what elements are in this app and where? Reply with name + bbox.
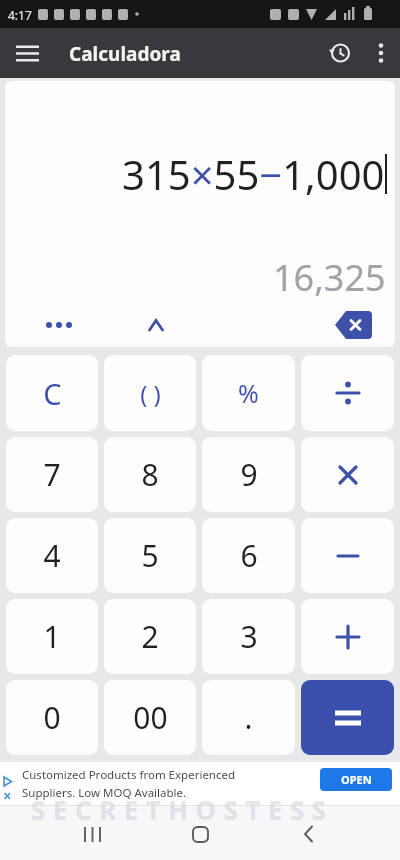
button[interactable] [8,34,46,72]
button[interactable]: 7 [6,437,98,512]
button[interactable]: 9 [202,437,295,512]
button[interactable]: % [202,355,295,431]
button[interactable]: 5 [104,518,196,593]
staticText: 00 [133,697,168,738]
button[interactable]: 3 [202,599,295,674]
staticText: % [238,376,259,410]
button[interactable] [301,518,394,593]
button[interactable]: 1 [6,599,98,674]
staticText: Customized Products from Experienced [22,767,236,783]
button[interactable]: 0 [6,680,98,755]
button[interactable] [301,355,394,431]
staticText: 0 [43,697,61,738]
staticText: . [244,697,253,738]
button[interactable]: ( ) [104,355,196,431]
staticText: 4 [43,535,61,576]
staticText: 7 [43,454,61,495]
staticText: 3 [240,616,258,657]
button[interactable] [284,815,332,853]
button[interactable]: . [202,680,295,755]
staticText: 8 [141,454,159,495]
staticText: 315×55−1,000 [122,147,385,201]
button[interactable]: 4 [6,518,98,593]
staticText: 1 [43,616,61,657]
button[interactable] [321,34,359,72]
button[interactable] [68,815,116,853]
button[interactable] [301,437,394,512]
button[interactable]: Customized Products from Experienced [0,762,400,805]
button[interactable]: C [6,355,98,431]
staticText: 9 [240,454,258,495]
staticText: 5 [141,535,159,576]
button[interactable] [38,305,82,345]
staticText: Suppliers. Low MOQ Available. [22,785,187,801]
staticText: C [43,374,62,413]
button[interactable]: 8 [104,437,196,512]
staticText: Calculadora [69,41,181,67]
button[interactable] [362,34,400,72]
button[interactable] [301,680,394,755]
button[interactable] [326,305,380,345]
staticText: 2 [141,616,159,657]
button[interactable]: 2 [104,599,196,674]
button[interactable] [176,815,224,853]
staticText: OPEN [341,772,372,787]
staticText: 4:17 [8,7,32,23]
button[interactable]: 00 [104,680,196,755]
button[interactable]: 6 [202,518,295,593]
button[interactable] [301,599,394,674]
staticText: 16,325 [273,253,386,302]
staticText: 6 [240,535,258,576]
button[interactable] [134,305,178,345]
staticText: SECRETHOSTESS [31,792,334,827]
staticText: ( ) [140,377,161,410]
button[interactable]: OPEN [320,768,392,791]
